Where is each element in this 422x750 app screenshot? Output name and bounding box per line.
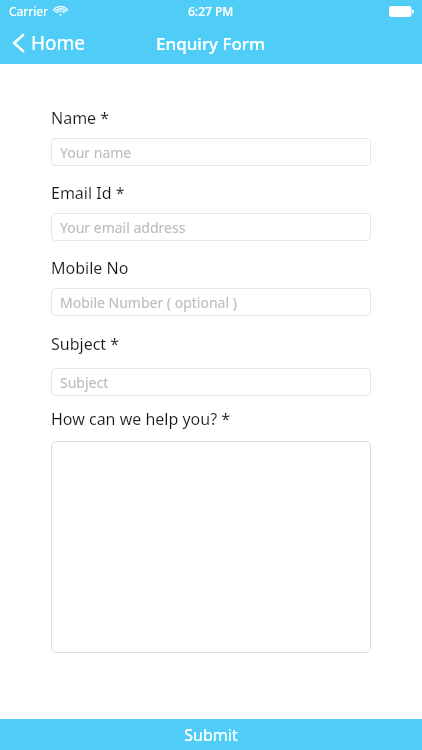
staticText: How can we help you? * xyxy=(51,408,231,430)
button[interactable] xyxy=(51,441,371,653)
staticText: Email Id * xyxy=(51,182,125,204)
staticText: Your email address xyxy=(60,218,186,237)
staticText: Subject xyxy=(60,373,109,392)
staticText: Home xyxy=(31,30,86,56)
button[interactable]: Your email address xyxy=(51,213,371,241)
staticText: Carrier xyxy=(9,3,49,19)
staticText: Enquiry Form xyxy=(156,32,266,55)
button[interactable]: Your name xyxy=(51,138,371,166)
staticText: Subject * xyxy=(51,333,120,355)
button[interactable]: Subject xyxy=(51,368,371,396)
other: Back xyxy=(12,32,25,54)
staticText: Mobile No xyxy=(51,257,129,279)
button[interactable]: Mobile Number ( optional ) xyxy=(51,288,371,316)
button[interactable]: Back xyxy=(0,26,100,60)
staticText: Your name xyxy=(60,143,132,162)
staticText: Name * xyxy=(51,107,110,129)
staticText: Mobile Number ( optional ) xyxy=(60,293,237,312)
staticText: 6:27 PM xyxy=(188,3,234,19)
staticText: Submit xyxy=(184,724,238,746)
button[interactable]: Submit xyxy=(0,719,422,750)
